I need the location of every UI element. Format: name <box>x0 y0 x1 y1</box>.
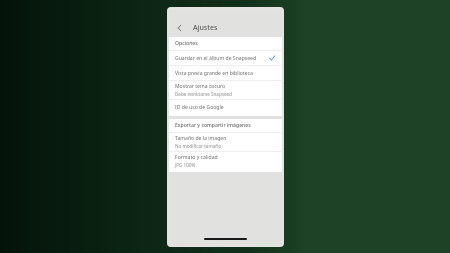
staticText: JPG 100% <box>175 162 196 168</box>
button[interactable]: Back <box>173 21 187 35</box>
button[interactable]: Tamaño de la imagen <box>169 133 282 151</box>
staticText: No modificar tamaño <box>175 143 221 149</box>
button[interactable]: ID de uso de Google <box>169 100 282 114</box>
staticText: Guardar en el álbum de Snapseed <box>175 55 257 62</box>
staticText: Opciones <box>175 40 198 47</box>
staticText: ID de uso de Google <box>175 104 224 111</box>
button[interactable]: Vista previa grande en biblioteca <box>169 66 282 80</box>
staticText: Ajustes <box>193 23 218 33</box>
button[interactable]: Guardar en el álbum de Snapseed <box>169 51 282 65</box>
button[interactable]: Mostrar tema oscuro <box>169 81 282 99</box>
staticText: Vista previa grande en biblioteca <box>175 70 253 77</box>
staticText: Formato y calidad <box>175 154 218 161</box>
staticText: Tamaño de la imagen <box>175 135 227 142</box>
staticText: Exportar y compartir imágenes <box>175 122 251 129</box>
button[interactable]: Formato y calidad <box>169 152 282 170</box>
staticText: Debe reiniciarse Snapseed <box>175 91 232 97</box>
staticText: Mostrar tema oscuro <box>175 83 226 90</box>
